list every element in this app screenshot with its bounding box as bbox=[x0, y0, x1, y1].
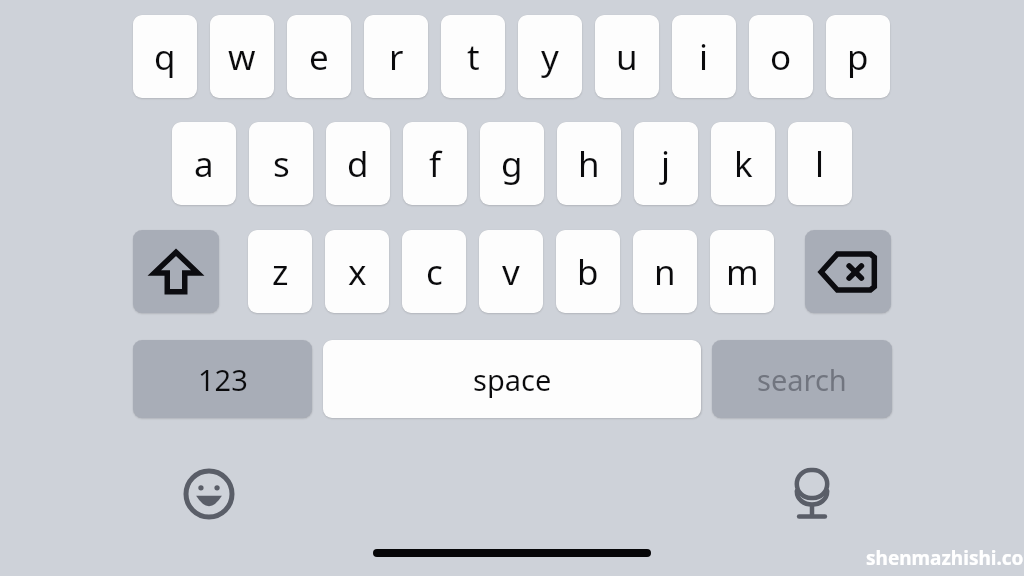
staticText: x bbox=[348, 248, 367, 296]
staticText: k bbox=[734, 140, 753, 188]
button[interactable]: e bbox=[287, 15, 351, 98]
button[interactable]: y bbox=[518, 15, 582, 98]
button[interactable]: v bbox=[479, 230, 543, 313]
button[interactable]: x bbox=[325, 230, 389, 313]
staticText: 123 bbox=[198, 360, 248, 399]
button[interactable]: z bbox=[248, 230, 312, 313]
button[interactable]: u bbox=[595, 15, 659, 98]
button[interactable]: f bbox=[403, 122, 467, 205]
staticText: r bbox=[389, 33, 404, 81]
button[interactable]: Dictation bbox=[782, 463, 842, 525]
staticText: b bbox=[577, 248, 599, 296]
button[interactable]: s bbox=[249, 122, 313, 205]
button[interactable]: n bbox=[633, 230, 697, 313]
button[interactable]: d bbox=[326, 122, 390, 205]
staticText: g bbox=[501, 140, 523, 188]
button[interactable]: q bbox=[133, 15, 197, 98]
button[interactable]: r bbox=[364, 15, 428, 98]
staticText: s bbox=[273, 140, 290, 188]
staticText: i bbox=[699, 33, 709, 81]
button[interactable]: Emoji keyboard bbox=[179, 464, 239, 524]
staticText: n bbox=[654, 248, 676, 296]
staticText: t bbox=[467, 33, 480, 81]
staticText: u bbox=[616, 33, 638, 81]
staticText: q bbox=[154, 33, 176, 81]
button[interactable]: space bbox=[323, 340, 701, 418]
button[interactable]: g bbox=[480, 122, 544, 205]
button[interactable]: l bbox=[788, 122, 852, 205]
staticText: search bbox=[757, 360, 847, 399]
button[interactable]: i bbox=[672, 15, 736, 98]
staticText: e bbox=[309, 33, 329, 81]
staticText: w bbox=[228, 33, 256, 81]
button[interactable]: search bbox=[712, 340, 892, 418]
staticText: v bbox=[502, 248, 520, 296]
button[interactable]: k bbox=[711, 122, 775, 205]
button[interactable]: 123 bbox=[133, 340, 312, 418]
button[interactable]: o bbox=[749, 15, 813, 98]
staticText: a bbox=[194, 140, 214, 188]
staticText: f bbox=[429, 140, 442, 188]
staticText: h bbox=[578, 140, 600, 188]
staticText: d bbox=[347, 140, 369, 188]
staticText: o bbox=[770, 33, 792, 81]
staticText: c bbox=[426, 248, 443, 296]
staticText: z bbox=[272, 248, 289, 296]
staticText: space bbox=[473, 360, 552, 399]
button[interactable]: j bbox=[634, 122, 698, 205]
staticText: shenmazhishi.com bbox=[866, 545, 1024, 571]
button[interactable]: t bbox=[441, 15, 505, 98]
staticText: l bbox=[815, 140, 825, 188]
button[interactable]: a bbox=[172, 122, 236, 205]
staticText: p bbox=[847, 33, 869, 81]
button[interactable]: w bbox=[210, 15, 274, 98]
button[interactable]: Backspace bbox=[805, 230, 891, 313]
button[interactable]: p bbox=[826, 15, 890, 98]
staticText: m bbox=[726, 248, 759, 296]
staticText: j bbox=[661, 140, 671, 188]
button[interactable]: b bbox=[556, 230, 620, 313]
button[interactable]: c bbox=[402, 230, 466, 313]
button[interactable]: m bbox=[710, 230, 774, 313]
staticText: y bbox=[541, 33, 559, 81]
button[interactable]: Shift bbox=[133, 230, 219, 313]
button[interactable]: h bbox=[557, 122, 621, 205]
